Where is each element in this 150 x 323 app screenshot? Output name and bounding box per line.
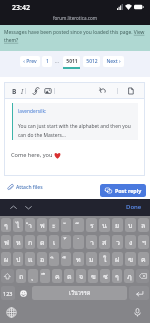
staticText: ส (102, 237, 107, 248)
button[interactable]: แ (25, 252, 35, 266)
button[interactable]: ป (13, 252, 23, 266)
staticText: ถ (19, 271, 24, 282)
button[interactable]: ใ (99, 252, 110, 266)
button[interactable]: ง (125, 235, 136, 249)
staticText: ก (28, 237, 33, 248)
button[interactable]: ฝ (112, 252, 123, 266)
staticText: ผ (4, 254, 9, 265)
button[interactable]: น (99, 218, 110, 232)
button[interactable]: เว้นวรรค (32, 286, 127, 300)
button[interactable]: Previous field (9, 203, 18, 212)
button[interactable]: ิ (49, 252, 59, 266)
staticText: ๆ (115, 271, 119, 282)
button[interactable]: Voice input (132, 307, 143, 318)
button[interactable]: Backspace (136, 269, 149, 283)
button[interactable]: ำ (25, 218, 35, 232)
button[interactable]: Messages have been posted since you load… (0, 25, 150, 51)
staticText: ฃ (128, 254, 133, 265)
button[interactable]: Insert link (30, 85, 41, 97)
button[interactable]: ั (61, 218, 71, 232)
button[interactable]: ด (37, 235, 47, 249)
staticText: You can just start with the alphabet and… (18, 123, 134, 138)
staticText: them? (4, 37, 19, 44)
staticText: I (21, 87, 24, 96)
button[interactable]: ย (112, 218, 123, 232)
button[interactable]: ฅ (138, 252, 149, 266)
button[interactable]: ก (25, 235, 35, 249)
button[interactable]: า (86, 235, 97, 249)
button[interactable]: ฃ (125, 252, 136, 266)
button[interactable]: Insert image (42, 85, 53, 97)
button[interactable]: ี (73, 218, 84, 232)
staticText: น (102, 220, 107, 231)
button[interactable]: Bold (9, 85, 20, 97)
staticText: ะ (52, 220, 56, 231)
button[interactable]: ช (100, 269, 110, 283)
button[interactable]: Next field (24, 203, 33, 212)
button[interactable]: ข (88, 269, 98, 283)
button[interactable]: ท (73, 252, 84, 266)
staticText: ฝ (115, 254, 120, 265)
staticText: ง (129, 237, 133, 248)
button[interactable]: ื (61, 252, 71, 266)
button[interactable]: 1 (42, 56, 52, 67)
button[interactable]: ไ (13, 218, 23, 232)
staticText: 23:42 (12, 3, 30, 13)
button[interactable]: ฦ (124, 269, 134, 283)
staticText: ว (116, 237, 120, 248)
button[interactable]: ฟ (1, 235, 11, 249)
button[interactable]: ร (86, 218, 97, 232)
button[interactable]: ‹ Prev (20, 56, 40, 67)
button[interactable]: Attach files (7, 184, 43, 191)
button[interactable]: ถ (16, 269, 26, 283)
button[interactable]: ค (52, 269, 62, 283)
button[interactable]: บ (125, 218, 136, 232)
button[interactable]: Change keyboard (6, 307, 17, 318)
staticText: ย (115, 220, 120, 231)
staticText: ล (141, 220, 146, 231)
staticText: Next › (106, 58, 121, 65)
staticText: ๆ (4, 220, 8, 231)
button[interactable]: 5012 (83, 56, 100, 67)
button[interactable]: Post reply (100, 184, 146, 197)
button[interactable]: Return (129, 286, 149, 300)
button[interactable]: ล (138, 218, 149, 232)
button[interactable]: จ (76, 269, 86, 283)
button[interactable]: 123 (1, 286, 15, 300)
staticText: ำ (28, 220, 32, 231)
button[interactable]: อ (37, 252, 47, 266)
button[interactable]: Done (126, 203, 142, 211)
button[interactable]: Paste (125, 85, 136, 97)
staticText: เว้นวรรค (69, 289, 91, 298)
button[interactable]: ้ (61, 235, 71, 249)
button[interactable]: ม (86, 252, 97, 266)
button[interactable]: ผ (1, 252, 11, 266)
button[interactable]: ว (112, 235, 123, 249)
button[interactable]: Next › (103, 56, 124, 67)
button[interactable]: ห (13, 235, 23, 249)
button[interactable]: Undo (97, 85, 108, 97)
button[interactable]: Emoji (17, 286, 30, 300)
button[interactable]: ะ (49, 218, 59, 232)
button[interactable]: Italic (17, 85, 28, 97)
button[interactable]: ่ (73, 235, 84, 249)
button[interactable]: ฯ (138, 235, 149, 249)
staticText: ค (55, 271, 60, 282)
button[interactable]: ๆ (1, 218, 11, 232)
staticText: ท (76, 254, 81, 265)
button[interactable]: 5011 (63, 56, 80, 67)
button[interactable]: พ (37, 218, 47, 232)
staticText: บ (128, 220, 133, 231)
staticText: Post reply (115, 187, 142, 194)
staticText: เ (53, 237, 56, 248)
staticText: ไ (16, 220, 20, 231)
button[interactable]: ๆ (112, 269, 122, 283)
button[interactable]: เ (49, 235, 59, 249)
button[interactable]: Shift (1, 269, 14, 283)
staticText: B (12, 87, 17, 96)
button[interactable]: ุ (28, 269, 38, 283)
staticText: ม (89, 254, 94, 265)
button[interactable]: ึ (40, 269, 50, 283)
button[interactable]: ต (64, 269, 74, 283)
button[interactable]: ส (99, 235, 110, 249)
